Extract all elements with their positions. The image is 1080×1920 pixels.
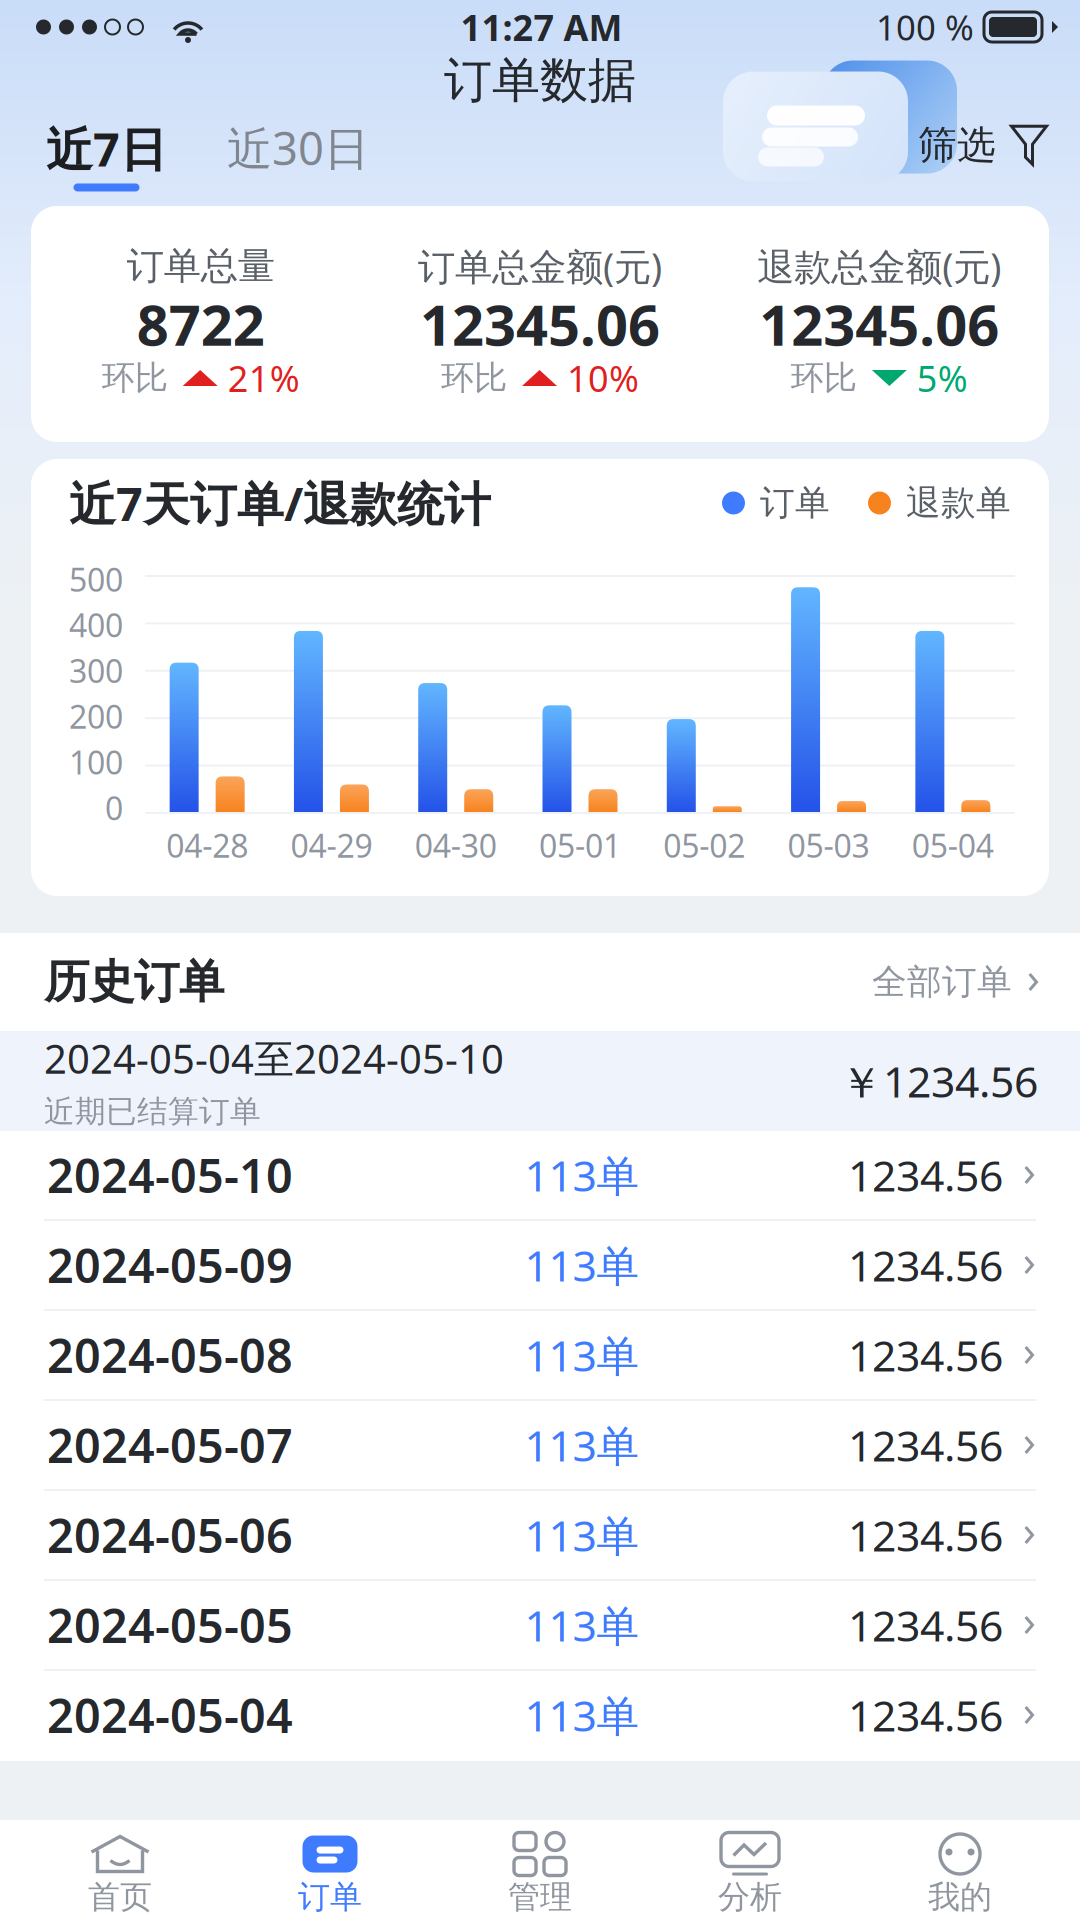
staticText: 订单总金额(元) xyxy=(418,241,662,291)
staticText: 12345.06 xyxy=(420,287,660,361)
staticText: 04-28 xyxy=(166,824,248,866)
staticText: 首页 xyxy=(88,1877,152,1917)
staticText: 113单 xyxy=(524,1507,639,1563)
staticText: 1234.56 xyxy=(848,1597,1003,1653)
staticText: 04-29 xyxy=(290,824,372,866)
staticText: 分析 xyxy=(718,1877,782,1917)
staticText: 近7天订单/退款统计 xyxy=(69,472,491,534)
staticText: 113单 xyxy=(524,1417,639,1473)
staticText: 2024-05-04 xyxy=(47,1684,293,1746)
staticText: 历史订单 xyxy=(44,954,224,1010)
staticText: 5% xyxy=(917,354,968,402)
staticText: 04-30 xyxy=(415,824,497,866)
staticText: 05-01 xyxy=(539,824,621,866)
staticText: 300 xyxy=(69,649,123,692)
staticText: 8722 xyxy=(137,287,265,361)
button[interactable]: 2024-05-06 xyxy=(0,1491,1080,1581)
staticText: 2024-05-08 xyxy=(47,1324,293,1386)
staticText: 12345.06 xyxy=(759,287,999,361)
staticText: 近30日 xyxy=(227,117,369,178)
button[interactable]: 近7日 xyxy=(40,117,173,191)
staticText: 1234.56 xyxy=(848,1237,1003,1293)
staticText: 1234.56 xyxy=(848,1327,1003,1383)
staticText: 200 xyxy=(69,695,123,738)
staticText: 2024-05-10 xyxy=(47,1144,293,1206)
staticText: 近7日 xyxy=(46,117,167,179)
staticText: 2024-05-09 xyxy=(47,1234,293,1296)
staticText: 订单 xyxy=(298,1877,362,1917)
staticText: 05-03 xyxy=(788,824,870,866)
button[interactable]: 筛选 xyxy=(918,121,1080,169)
staticText: 订单总量 xyxy=(127,243,275,289)
staticText: 环比 xyxy=(441,357,507,398)
staticText: 400 xyxy=(69,604,123,646)
staticText: 筛选 xyxy=(918,121,996,169)
staticText: 近期已结算订单 xyxy=(44,1093,261,1130)
staticText: 113单 xyxy=(524,1687,639,1743)
staticText: 全部订单 xyxy=(872,961,1012,1003)
button[interactable]: 2024-05-04 xyxy=(0,1671,1080,1761)
staticText: 我的 xyxy=(928,1877,992,1917)
staticText: 0 xyxy=(105,786,123,829)
button[interactable]: 全部订单 xyxy=(872,961,1038,1003)
staticText: 100 xyxy=(69,741,123,783)
staticText: 2024-05-06 xyxy=(47,1504,293,1566)
staticText: 05-04 xyxy=(912,824,994,866)
staticText: 环比 xyxy=(102,357,168,398)
button[interactable]: 2024-05-10 xyxy=(0,1131,1080,1221)
button[interactable]: 近30日 xyxy=(221,117,375,190)
button[interactable]: 2024-05-07 xyxy=(0,1401,1080,1491)
staticText: 管理 xyxy=(508,1877,572,1917)
staticText: 1234.56 xyxy=(848,1147,1003,1203)
button[interactable]: 我的 xyxy=(855,1820,1065,1920)
button[interactable]: 首页 xyxy=(15,1820,225,1920)
staticText: 退款总金额(元) xyxy=(757,241,1001,291)
staticText: 订单数据 xyxy=(444,51,636,110)
staticText: 1234.56 xyxy=(848,1507,1003,1563)
staticText: 05-02 xyxy=(663,824,745,866)
button[interactable]: 2024-05-08 xyxy=(0,1311,1080,1401)
staticText: 2024-05-05 xyxy=(47,1594,293,1656)
button[interactable]: 分析 xyxy=(645,1820,855,1920)
staticText: 113单 xyxy=(524,1327,639,1383)
button[interactable]: 管理 xyxy=(435,1820,645,1920)
staticText: 113单 xyxy=(524,1237,639,1293)
staticText: 100 % xyxy=(876,4,974,50)
staticText: 1234.56 xyxy=(848,1687,1003,1743)
staticText: 订单 xyxy=(760,482,830,524)
staticText: 环比 xyxy=(791,357,857,398)
staticText: 113单 xyxy=(524,1147,639,1203)
staticText: 10% xyxy=(567,354,639,402)
button[interactable]: 订单 xyxy=(225,1820,435,1920)
button[interactable]: 2024-05-09 xyxy=(0,1221,1080,1311)
staticText: 2024-05-04至2024-05-10 xyxy=(44,1032,504,1085)
staticText: 500 xyxy=(69,558,123,600)
staticText: 1234.56 xyxy=(848,1417,1003,1473)
staticText: 21% xyxy=(228,354,300,402)
staticText: 2024-05-07 xyxy=(47,1414,293,1476)
staticText: ￥1234.56 xyxy=(840,1053,1038,1109)
staticText: 113单 xyxy=(524,1597,639,1653)
button[interactable]: 2024-05-05 xyxy=(0,1581,1080,1671)
staticText: 11:27 AM xyxy=(460,3,622,51)
staticText: 退款单 xyxy=(906,482,1011,524)
